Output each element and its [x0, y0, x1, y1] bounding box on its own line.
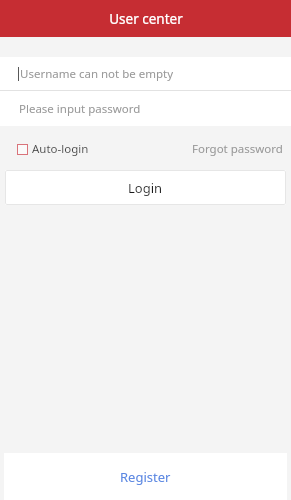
- button[interactable]: Username can not be empty: [0, 57, 291, 90]
- staticText: Auto-login: [32, 141, 89, 157]
- staticText: User center: [109, 10, 183, 28]
- staticText: Register: [120, 468, 171, 486]
- button[interactable]: Please input password: [0, 91, 291, 126]
- staticText: Username can not be empty: [20, 66, 174, 82]
- button[interactable]: Register: [4, 453, 287, 500]
- button[interactable]: Auto-login: [17, 138, 89, 160]
- staticText: Login: [128, 179, 163, 197]
- staticText: Please input password: [19, 101, 141, 117]
- button[interactable]: Login: [5, 170, 286, 205]
- button[interactable]: Forgot password: [192, 137, 283, 161]
- staticText: Forgot password: [192, 141, 283, 157]
